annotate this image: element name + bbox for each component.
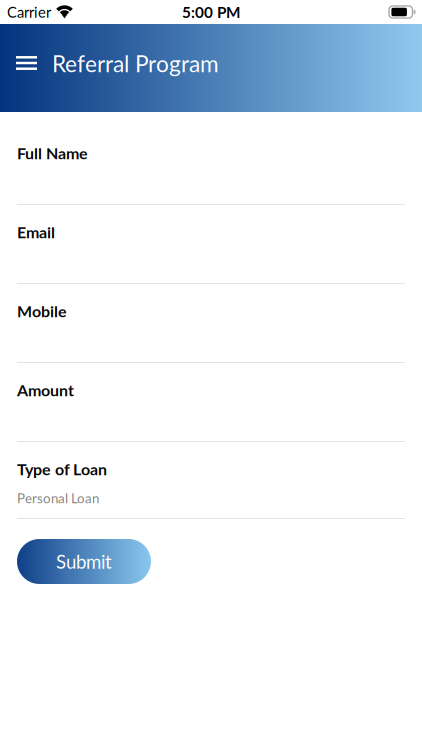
button[interactable]: Menu	[0, 24, 52, 84]
staticText: Full Name	[17, 143, 88, 163]
staticText: Personal Loan	[17, 490, 99, 506]
staticText: 5:00 PM	[182, 3, 240, 21]
staticText: Mobile	[17, 301, 67, 321]
button[interactable]: Submit	[17, 539, 151, 584]
staticText: Referral Program	[52, 50, 219, 77]
staticText: Submit	[56, 550, 112, 573]
staticText: Carrier	[7, 3, 51, 21]
staticText: Type of Loan	[17, 459, 107, 479]
staticText: Amount	[17, 380, 74, 400]
staticText: Email	[17, 222, 55, 242]
